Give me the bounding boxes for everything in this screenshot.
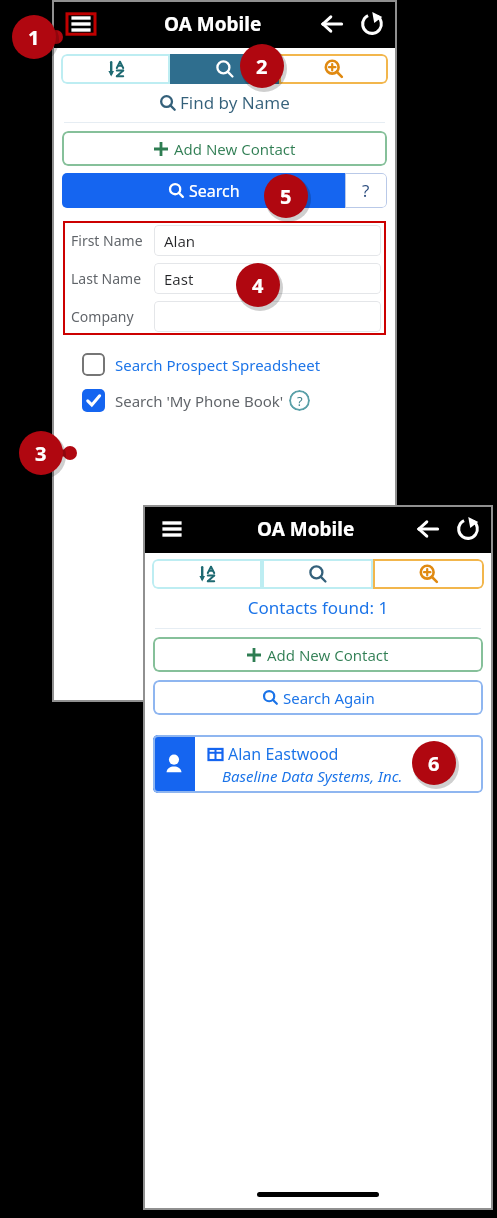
staticText: Search 'My Phone Book' (115, 391, 284, 411)
staticText: Company (71, 307, 154, 326)
button[interactable]: Search Prospect Spreadsheet (82, 353, 321, 376)
button[interactable]: Help (289, 390, 310, 411)
button[interactable]: Add New Contact (153, 637, 483, 672)
staticText: 2 (256, 53, 268, 80)
staticText: Find by Name (180, 91, 290, 114)
button[interactable]: Help (345, 173, 387, 208)
staticText: ? (362, 179, 370, 202)
staticText: 6 (428, 750, 440, 777)
staticText: Search Again (283, 688, 375, 708)
staticText: Last Name (71, 269, 154, 288)
button[interactable]: Sort (152, 559, 262, 589)
button[interactable]: Add New Contact (62, 131, 387, 166)
staticText: Add New Contact (174, 139, 296, 159)
staticText: East (164, 269, 194, 289)
staticText: Search Prospect Spreadsheet (115, 355, 321, 375)
button[interactable]: Sort (61, 54, 170, 84)
button[interactable]: Refresh (355, 7, 389, 41)
button[interactable]: Search (262, 559, 373, 589)
button[interactable]: Menu (66, 9, 96, 39)
button[interactable]: OA Mobile (257, 516, 355, 542)
button[interactable]: Alan Eastwood (153, 735, 483, 793)
button[interactable]: Menu (157, 514, 187, 544)
button[interactable]: Advanced search (373, 559, 484, 589)
button[interactable]: Search 'My Phone Book' (82, 389, 310, 412)
staticText: ? (297, 392, 303, 410)
staticText: 5 (280, 183, 292, 210)
button[interactable]: Contacts found: 1 (143, 596, 493, 619)
button[interactable]: OA Mobile (164, 11, 262, 37)
button[interactable]: Search (170, 54, 279, 84)
button[interactable]: Search Again (153, 680, 483, 715)
button[interactable]: Back (315, 7, 349, 41)
button[interactable]: Back (411, 512, 445, 546)
button[interactable]: Advanced search (279, 54, 388, 84)
staticText: Baseline Data Systems, Inc. (222, 766, 403, 786)
staticText: 1 (28, 24, 40, 51)
button[interactable]: Refresh (451, 512, 485, 546)
staticText: Add New Contact (267, 645, 389, 665)
staticText: 4 (252, 272, 264, 299)
staticText: 3 (35, 440, 47, 467)
staticText: First Name (71, 231, 154, 250)
staticText: Alan Eastwood (228, 743, 339, 765)
staticText: Alan (164, 231, 196, 251)
button[interactable]: Search (62, 173, 345, 208)
staticText: Search (189, 180, 240, 202)
